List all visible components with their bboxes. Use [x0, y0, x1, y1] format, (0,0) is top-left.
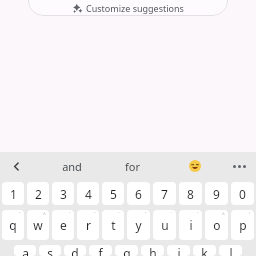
staticText: ¨ [170, 211, 173, 218]
staticText: for [125, 159, 140, 174]
button[interactable]: j [167, 245, 190, 256]
staticText: j [177, 245, 181, 256]
staticText: ^ [43, 211, 46, 218]
staticText: 3 [60, 186, 67, 202]
staticText: ' [249, 211, 251, 218]
button[interactable]: a [14, 245, 36, 256]
staticText: and [62, 159, 82, 174]
button[interactable]: Customize suggestions [28, 0, 228, 16]
staticText: 2 [35, 186, 42, 202]
button[interactable]: d [64, 245, 86, 256]
button[interactable]: 3 [52, 182, 74, 205]
staticText: k [201, 245, 208, 256]
button[interactable]: 0 [231, 182, 254, 205]
button[interactable]: ¨ [153, 210, 176, 240]
button[interactable]: ^ [27, 210, 49, 240]
button[interactable]: 8 [179, 182, 202, 205]
staticText: q [9, 217, 17, 233]
button[interactable]: ^ [205, 210, 228, 240]
staticText: ` [145, 211, 147, 218]
staticText: 9 [213, 186, 220, 202]
button[interactable]: 7 [153, 182, 176, 205]
button[interactable]: ¨ [102, 210, 124, 240]
staticText: ´ [197, 211, 199, 218]
staticText: h [149, 245, 157, 256]
staticText: ` [19, 211, 21, 218]
button[interactable]: ´ [179, 210, 202, 240]
staticText: y [135, 217, 142, 233]
staticText: t [111, 217, 116, 233]
button[interactable]: f [89, 245, 112, 256]
button[interactable]: ´ [77, 210, 99, 240]
staticText: u [161, 217, 169, 233]
staticText: 5 [110, 186, 117, 202]
staticText: ¨ [118, 211, 121, 218]
staticText: r [86, 217, 91, 233]
staticText: 6 [135, 186, 142, 202]
staticText: d [71, 245, 79, 256]
button[interactable]: and [48, 152, 96, 180]
staticText: ^ [222, 211, 225, 218]
button[interactable]: ' [231, 210, 254, 240]
staticText: f [98, 245, 103, 256]
button[interactable]: s [39, 245, 61, 256]
staticText: 4 [85, 186, 92, 202]
staticText: g [123, 245, 131, 256]
button[interactable]: ` [127, 210, 150, 240]
staticText: s [47, 245, 53, 256]
staticText: l [229, 245, 233, 256]
staticText: ` [69, 211, 71, 218]
button[interactable]: ` [52, 210, 74, 240]
staticText: i [189, 217, 193, 233]
button[interactable]: 6 [127, 182, 150, 205]
button[interactable]: 2 [27, 182, 49, 205]
staticText: e [60, 217, 67, 233]
staticText: 8 [187, 186, 194, 202]
button[interactable]: g [115, 245, 138, 256]
button[interactable]: 4 [77, 182, 99, 205]
staticText: a [22, 245, 29, 256]
button[interactable]: ` [2, 210, 24, 240]
button[interactable]: for [108, 152, 156, 180]
button[interactable]: 1 [2, 182, 24, 205]
button[interactable]: Emoji [184, 155, 206, 177]
staticText: 1 [10, 186, 17, 202]
button[interactable]: k [193, 245, 216, 256]
staticText: p [239, 217, 247, 233]
button[interactable]: 9 [205, 182, 228, 205]
staticText: Customize suggestions [86, 2, 184, 14]
button[interactable]: Back [6, 156, 26, 176]
staticText: w [33, 217, 43, 233]
button[interactable]: l [219, 245, 242, 256]
button[interactable]: More options [228, 155, 250, 177]
button[interactable]: h [141, 245, 164, 256]
button[interactable]: 5 [102, 182, 124, 205]
staticText: 7 [161, 186, 168, 202]
staticText: 0 [239, 186, 246, 202]
staticText: ´ [94, 211, 96, 218]
staticText: o [213, 217, 221, 233]
